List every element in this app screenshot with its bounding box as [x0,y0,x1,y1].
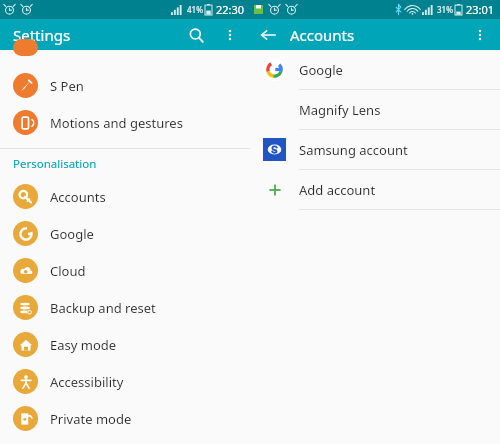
button[interactable]: Backup and reset [0,289,250,326]
button[interactable]: Google [0,215,250,252]
button[interactable]: Samsung account [250,130,500,169]
staticText: Easy mode [50,336,117,354]
staticText: 23:01 [466,2,495,17]
button[interactable]: Search [182,21,210,49]
staticText: Magnify Lens [299,101,381,119]
staticText: Backup and reset [50,299,156,317]
button[interactable]: Add account [250,170,500,209]
staticText: 31% [437,4,453,15]
button[interactable]: Accessibility [0,363,250,400]
button[interactable]: Back [254,21,282,49]
button[interactable] [0,50,250,67]
button[interactable]: Google [250,50,500,89]
staticText: Accessibility [50,373,124,391]
staticText: Motions and gestures [50,114,183,132]
button[interactable]: S Pen [0,67,250,104]
button[interactable]: Magnify Lens [250,90,500,129]
button[interactable]: Motions and gestures [0,104,250,141]
staticText: Accounts [50,188,106,206]
button[interactable]: Cloud [0,252,250,289]
staticText: Accounts [290,25,355,45]
staticText: Private mode [50,410,132,428]
staticText: Cloud [50,262,86,280]
staticText: Google [299,61,343,79]
staticText: Settings [13,25,71,45]
staticText: Samsung account [299,141,408,159]
staticText: Google [50,225,94,243]
button[interactable]: More options [466,21,494,49]
staticText: Add account [299,181,376,199]
staticText: S Pen [50,77,84,95]
button[interactable]: Easy mode [0,326,250,363]
button[interactable]: More options [216,21,244,49]
button[interactable]: Accounts [0,178,250,215]
button[interactable]: Private mode [0,400,250,437]
staticText: 22:30 [216,2,245,17]
staticText: Personalisation [13,156,97,172]
staticText: 41% [187,4,203,15]
